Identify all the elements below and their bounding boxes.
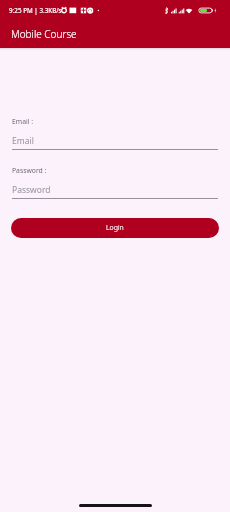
staticText: 9:25 PM | 3.3KB/s (9, 6, 62, 15)
button[interactable]: Login (11, 218, 219, 238)
other: Home gesture handle (79, 504, 152, 507)
staticText: Password (12, 184, 51, 196)
other: Bluetooth, signal, Wi-Fi and battery sta… (164, 6, 220, 15)
staticText: Email : (12, 117, 34, 126)
staticText: Mobile Course (11, 27, 77, 41)
button[interactable]: Password (0, 182, 230, 199)
other: Notification icons (61, 6, 101, 15)
staticText: Email (12, 135, 34, 147)
staticText: Login (106, 223, 124, 233)
button[interactable]: Email (0, 133, 230, 150)
staticText: Password : (12, 166, 47, 175)
